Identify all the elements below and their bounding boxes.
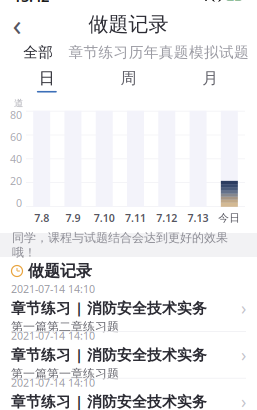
button[interactable]: 日	[6, 65, 88, 95]
staticText: 道	[14, 97, 23, 109]
staticText: ›	[241, 343, 246, 366]
staticText: 7.11	[125, 211, 146, 225]
staticText: 2021-07-14 14:10	[11, 375, 95, 390]
staticText: 周	[120, 68, 136, 88]
staticText: 全部	[23, 43, 53, 61]
button[interactable]: 模拟试题	[189, 39, 249, 65]
staticText: 2021-07-14 14:10	[11, 329, 95, 343]
staticText: 80	[10, 108, 22, 122]
staticText: 第一篇第一章练习题	[11, 366, 119, 381]
button[interactable]: 月	[169, 65, 251, 95]
staticText: 章节练习	[68, 43, 128, 61]
staticText: 章节练习 | 消防安全技术实务	[11, 298, 207, 317]
staticText: 60	[10, 130, 22, 144]
button[interactable]: 2021-07-14 14:10	[0, 379, 257, 410]
staticText: 今日	[218, 211, 240, 224]
button[interactable]: 全部	[8, 39, 68, 65]
button[interactable]: 章节练习	[68, 39, 128, 65]
staticText: ϟ	[231, 0, 236, 3]
button[interactable]: 历年真题	[128, 39, 189, 65]
button[interactable]: 周	[88, 65, 169, 95]
staticText: 15:42	[13, 0, 49, 6]
staticText: 日	[39, 68, 55, 88]
staticText: 做題记录	[88, 12, 168, 37]
staticText: ‹	[12, 5, 21, 44]
staticText: 章节练习 | 消防安全技术实务	[11, 345, 207, 364]
staticText: 40	[10, 152, 22, 166]
staticText: 历年真题	[129, 43, 189, 61]
button[interactable]: 2021-07-14 14:10	[0, 332, 257, 378]
staticText: 7.10	[94, 211, 115, 225]
button[interactable]: 2021-07-14 14:10	[0, 285, 257, 331]
staticText: 同学，课程与试题结合会达到更好的效果哦！	[12, 230, 228, 260]
staticText: 第一篇第二章练习题	[11, 319, 119, 334]
staticText: 7.12	[156, 211, 177, 225]
staticText: 7.8	[34, 211, 49, 225]
staticText: 0	[16, 196, 22, 210]
staticText: 7.9	[65, 211, 80, 225]
staticText: ›	[241, 390, 246, 410]
button[interactable]: Back	[0, 9, 34, 39]
staticText: 月	[202, 68, 218, 88]
staticText: 做题记录	[28, 261, 92, 281]
staticText: ›	[241, 296, 246, 319]
staticText: 20	[10, 174, 22, 188]
staticText: 2021-07-14 14:10	[11, 282, 95, 296]
staticText: 模拟试题	[189, 43, 249, 61]
staticText: 7.13	[188, 211, 209, 225]
staticText: 章节练习 | 消防安全技术实务	[11, 392, 207, 410]
